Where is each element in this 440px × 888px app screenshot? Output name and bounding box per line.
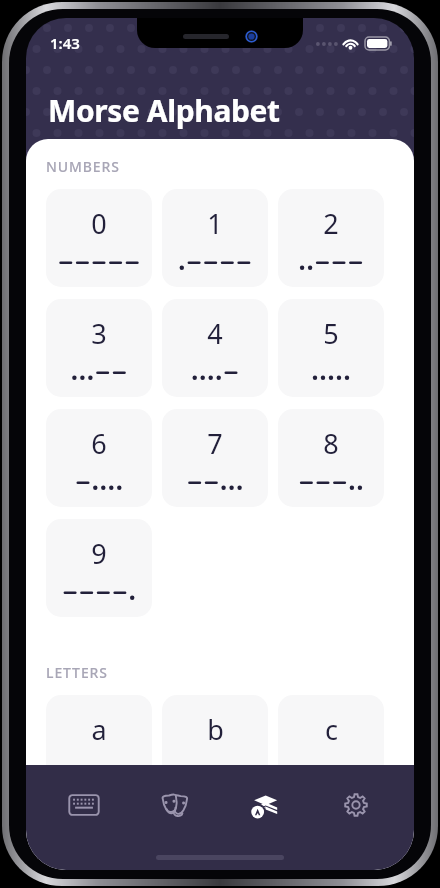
button[interactable]: 4 bbox=[162, 299, 268, 397]
button[interactable]: Alphabet bbox=[233, 779, 297, 831]
button[interactable]: Keyboard bbox=[52, 779, 116, 831]
staticText: Morse Alphabet bbox=[48, 90, 280, 131]
button[interactable]: 1 bbox=[162, 189, 268, 287]
staticText: 1 bbox=[207, 205, 223, 242]
button[interactable]: c bbox=[278, 695, 384, 793]
staticText: 2 bbox=[323, 205, 339, 242]
staticText: NUMBERS bbox=[46, 157, 120, 176]
button[interactable]: 7 bbox=[162, 409, 268, 507]
button[interactable]: 9 bbox=[46, 519, 152, 617]
staticText: LETTERS bbox=[46, 663, 108, 682]
button[interactable]: 8 bbox=[278, 409, 384, 507]
button[interactable]: 5 bbox=[278, 299, 384, 397]
staticText: 4 bbox=[207, 315, 223, 352]
button[interactable]: 3 bbox=[46, 299, 152, 397]
staticText: 7 bbox=[207, 425, 223, 462]
staticText: a bbox=[91, 711, 107, 748]
staticText: 0 bbox=[91, 205, 107, 242]
button[interactable]: a bbox=[46, 695, 152, 793]
button[interactable]: Settings bbox=[324, 779, 388, 831]
button[interactable]: Phrases bbox=[143, 779, 207, 831]
button[interactable]: 6 bbox=[46, 409, 152, 507]
button[interactable]: 2 bbox=[278, 189, 384, 287]
staticText: c bbox=[325, 711, 338, 748]
staticText: 6 bbox=[91, 425, 107, 462]
staticText: 1:43 bbox=[50, 33, 80, 53]
button[interactable]: b bbox=[162, 695, 268, 793]
staticText: 9 bbox=[91, 535, 107, 572]
staticText: b bbox=[207, 711, 224, 748]
button[interactable]: 0 bbox=[46, 189, 152, 287]
staticText: 8 bbox=[323, 425, 339, 462]
staticText: 5 bbox=[323, 315, 339, 352]
staticText: 3 bbox=[91, 315, 107, 352]
